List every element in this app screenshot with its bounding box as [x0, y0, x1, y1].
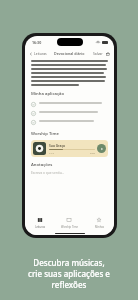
button[interactable] [31, 118, 108, 127]
button[interactable]: Salvar [93, 51, 103, 56]
button[interactable]: Sua Graça [31, 140, 108, 157]
staticText: Worship Time [31, 131, 59, 137]
staticText: Leituras [35, 225, 45, 229]
button[interactable]: Minhas [84, 215, 114, 231]
staticText: Escreva o que sentiu... [31, 171, 65, 175]
staticText: Worship Time [61, 225, 78, 229]
staticText: Leituras [34, 51, 47, 56]
staticText: Salvar [93, 51, 103, 56]
staticText: 16:30 [32, 40, 42, 45]
button[interactable]: Worship Time [54, 215, 84, 231]
button[interactable] [31, 100, 108, 109]
staticText: 1:12 [49, 151, 54, 154]
button[interactable]: Play [97, 144, 106, 153]
staticText: Minhas [95, 225, 104, 229]
staticText: Minha aplicação [31, 91, 65, 97]
staticText: Sua Graça [49, 143, 65, 147]
staticText: Devocional diário [54, 51, 85, 56]
button[interactable]: Share [105, 51, 110, 56]
staticText: Descubra músicas, crie suas aplicações e… [28, 257, 110, 290]
button[interactable]: Leituras [25, 215, 54, 231]
button[interactable]: Leituras [29, 51, 47, 56]
staticText: Anotações [31, 162, 53, 168]
button[interactable] [31, 109, 108, 118]
staticText: 3:45 [90, 151, 95, 154]
